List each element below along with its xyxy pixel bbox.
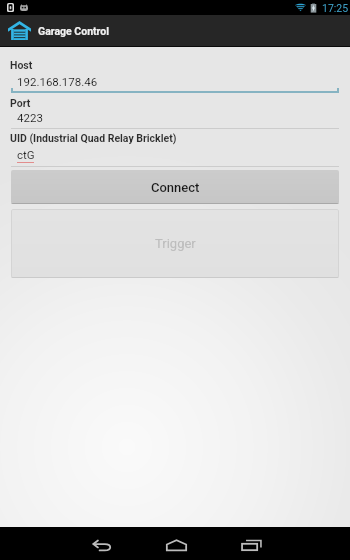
staticText: Port	[10, 97, 31, 109]
staticText: 17:25	[322, 2, 349, 14]
staticText: 192.168.178.46	[17, 75, 98, 88]
button[interactable]: Trigger	[11, 209, 339, 278]
staticText: Connect	[151, 180, 200, 195]
button[interactable]: Recents	[229, 527, 273, 560]
button[interactable]: Back	[79, 527, 123, 560]
staticText: Trigger	[155, 236, 196, 251]
staticText: UID (Industrial Quad Relay Bricklet)	[10, 132, 177, 144]
button[interactable]: Connect	[11, 170, 339, 204]
staticText: Garage Control	[38, 25, 109, 37]
button[interactable]: Home	[154, 527, 198, 560]
staticText: Host	[10, 59, 33, 71]
staticText: 4223	[17, 111, 43, 124]
staticText: ctG	[17, 148, 35, 161]
button[interactable]: Garage Control	[7, 19, 32, 41]
